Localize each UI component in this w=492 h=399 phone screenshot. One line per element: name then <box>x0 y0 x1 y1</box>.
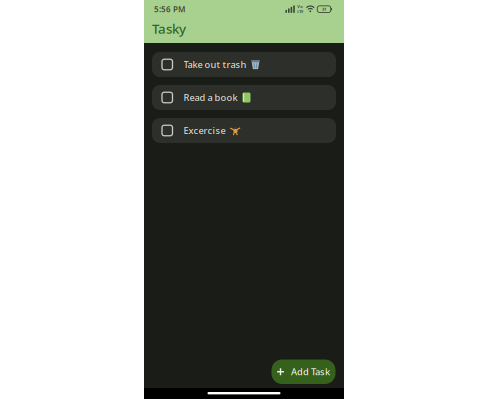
button[interactable]: Complete Take out trash <box>162 59 172 70</box>
button[interactable]: Take out trash <box>152 52 336 77</box>
staticText: Tasky <box>152 20 186 37</box>
button[interactable]: Complete Read a book <box>162 92 172 103</box>
button[interactable]: Complete Excercise <box>162 125 172 136</box>
staticText: 31 <box>322 6 326 12</box>
staticText: Vo <box>297 4 303 9</box>
staticText: Excercise <box>183 124 225 137</box>
staticText: Add Task <box>291 366 330 378</box>
staticText: LTE <box>297 9 303 14</box>
staticText: Read a book <box>183 91 237 104</box>
staticText: 5:56 PM <box>154 4 185 14</box>
button[interactable]: Add Task <box>271 359 335 384</box>
button[interactable]: Read a book <box>152 85 336 110</box>
button[interactable]: Excercise <box>152 118 336 143</box>
staticText: Take out trash <box>183 58 246 71</box>
